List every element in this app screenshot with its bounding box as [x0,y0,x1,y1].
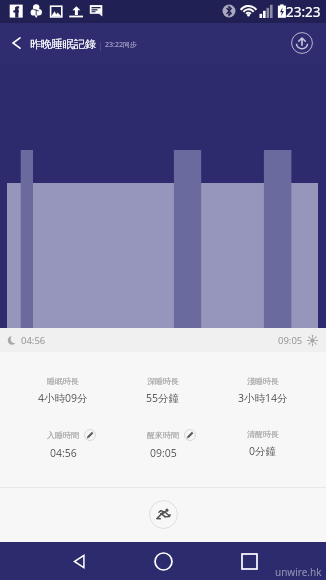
staticText: 醒來時間 [147,430,179,440]
button[interactable]: Back [64,546,94,576]
staticText: 04:56 [50,446,77,460]
staticText: 睡眠時長 [47,376,79,386]
staticText: 4小時09分 [38,391,88,405]
button[interactable]: Back [0,27,32,59]
staticText: 09:05 [278,334,303,347]
button[interactable]: Share [288,29,316,57]
button[interactable]: 醒來時間 [113,429,213,460]
staticText: 55分鐘 [146,391,180,405]
button[interactable]: Activity [149,500,178,529]
button[interactable]: 淺睡時長 [213,376,313,405]
staticText: 23:22同步 [105,40,137,50]
button[interactable]: Recents [234,546,264,576]
staticText: 04:56 [21,334,46,347]
staticText: 3小時14分 [238,391,288,405]
staticText: 淺睡時長 [247,376,279,386]
staticText: 09:05 [150,446,177,460]
staticText: 0分鐘 [249,444,277,458]
staticText: unwire.hk [275,565,322,579]
staticText: 昨晚睡眠記錄 [30,37,96,51]
staticText: 23:23 [286,3,321,21]
staticText: 深睡時長 [147,376,179,386]
button[interactable]: 深睡時長 [113,376,213,405]
button[interactable]: 入睡時間 [13,429,113,460]
staticText: 清醒時長 [247,429,279,439]
button[interactable]: 睡眠時長 [13,376,113,405]
button[interactable]: 清醒時長 [213,429,313,458]
staticText: 入睡時間 [47,430,79,440]
button[interactable]: Home [148,546,178,576]
